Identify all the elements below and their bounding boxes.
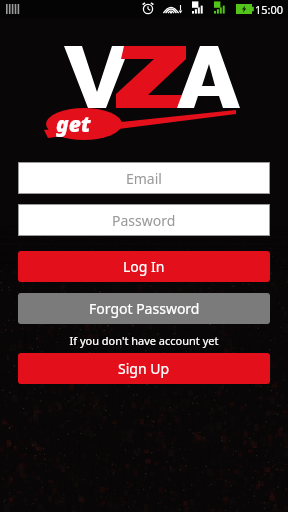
button[interactable]: Log In xyxy=(18,251,270,282)
staticText: If you don't have account yet xyxy=(0,333,288,348)
button[interactable]: Password xyxy=(18,204,270,236)
staticText: 15:00 xyxy=(255,2,284,17)
staticText: get xyxy=(56,110,91,139)
staticText: Email xyxy=(126,169,162,188)
button[interactable]: Forgot Password xyxy=(18,293,270,324)
button[interactable]: Email xyxy=(18,162,270,194)
staticText: Log In xyxy=(123,257,165,276)
staticText: Forgot Password xyxy=(89,299,200,318)
staticText: Password xyxy=(112,211,176,230)
button[interactable]: Sign Up xyxy=(18,353,270,384)
staticText: Sign Up xyxy=(118,359,170,378)
